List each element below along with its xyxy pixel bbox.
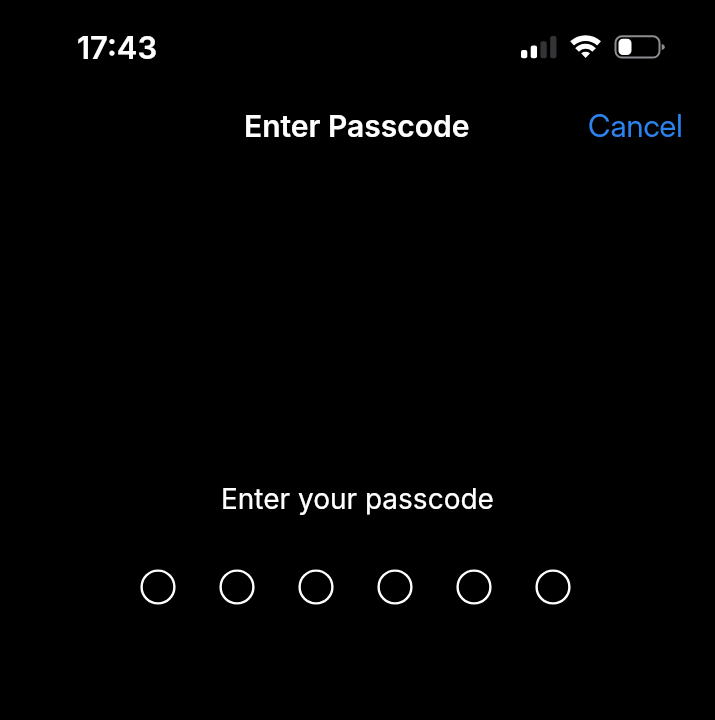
button[interactable]: Cancel (574, 99, 697, 153)
other: Wi-Fi connected (569, 35, 602, 60)
staticText: Enter your passcode (221, 482, 494, 516)
other: Cellular signal strength (521, 36, 558, 59)
button[interactable]: Passcode entry field, 6 digits (124, 552, 587, 621)
other: Battery 30 percent (613, 34, 667, 60)
staticText: Enter Passcode (244, 108, 470, 144)
staticText: 17:43 (77, 29, 158, 67)
staticText: Cancel (588, 107, 683, 145)
